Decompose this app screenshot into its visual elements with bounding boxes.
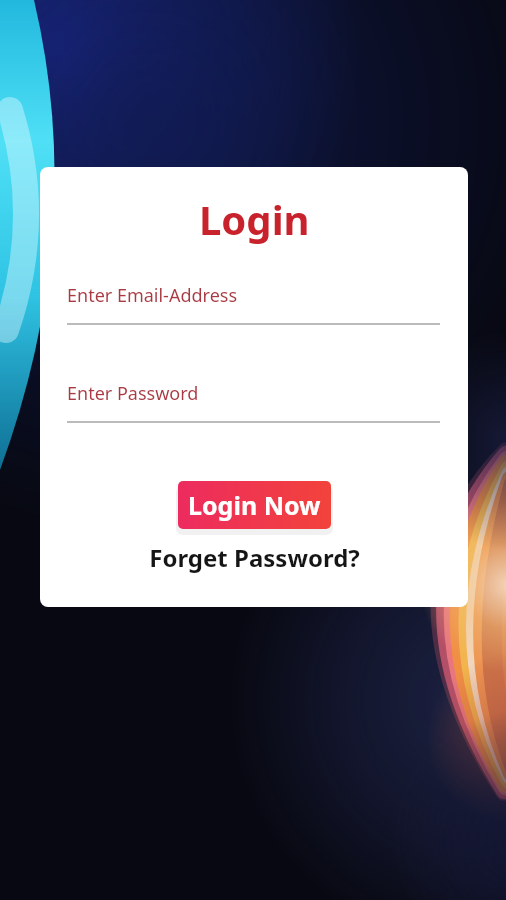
staticText: Login	[199, 192, 310, 246]
staticText: Enter Password	[67, 381, 199, 406]
button[interactable]: Enter Password	[67, 375, 440, 423]
button[interactable]: Enter Email-Address	[67, 277, 440, 325]
button[interactable]: Forget Password?	[149, 541, 360, 574]
button[interactable]: Login Now	[178, 481, 331, 529]
staticText: Forget Password?	[149, 541, 360, 574]
staticText: Login Now	[188, 488, 321, 522]
staticText: Enter Email-Address	[67, 283, 238, 308]
